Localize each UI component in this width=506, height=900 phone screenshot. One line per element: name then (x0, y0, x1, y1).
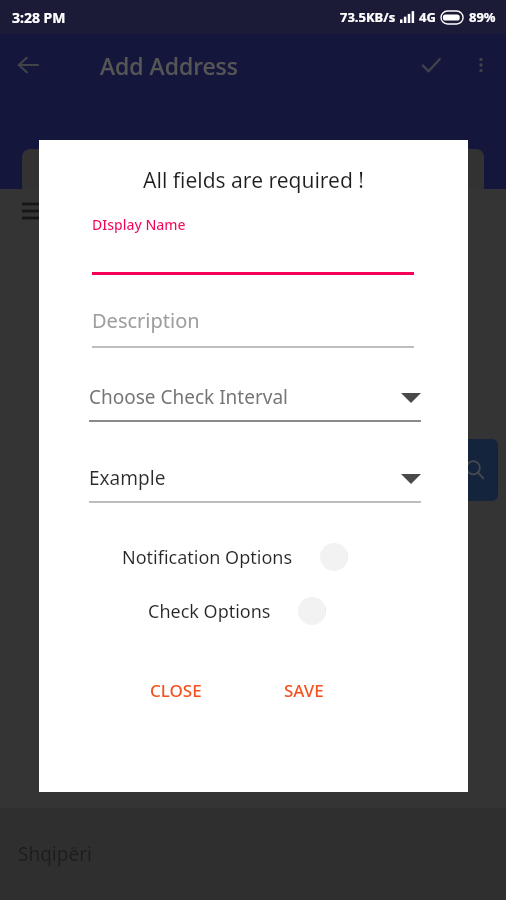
staticText: Choose Check Interval (89, 384, 401, 410)
button[interactable]: SAVE (276, 673, 332, 708)
staticText: DIsplay Name (92, 215, 186, 234)
button[interactable]: Check Options (39, 589, 468, 633)
staticText: Shqipëri (18, 841, 92, 867)
staticText: Notification Options (122, 545, 293, 570)
button[interactable]: Search (452, 439, 498, 501)
button[interactable]: Choose Check Interval (89, 384, 421, 422)
button[interactable]: CLOSE (142, 673, 210, 708)
staticText: Add Address (100, 50, 238, 81)
button[interactable]: Description (92, 307, 414, 348)
staticText: Check Options (148, 599, 271, 624)
button[interactable]: Notification Options (39, 535, 468, 579)
staticText: 73.5KB/s (340, 8, 396, 26)
staticText: CLOSE (150, 679, 202, 702)
button[interactable]: Confirm (406, 40, 456, 90)
button[interactable]: Example (89, 465, 421, 503)
button[interactable]: Back (0, 37, 56, 93)
staticText: All fields are required ! (39, 166, 468, 195)
staticText: SAVE (284, 679, 324, 702)
staticText: Example (89, 465, 401, 491)
staticText: 3:28 PM (12, 8, 66, 27)
staticText: 89% (469, 8, 496, 26)
button[interactable]: More options (456, 40, 506, 90)
staticText: 4G (419, 8, 436, 26)
staticText: Description (92, 307, 200, 334)
